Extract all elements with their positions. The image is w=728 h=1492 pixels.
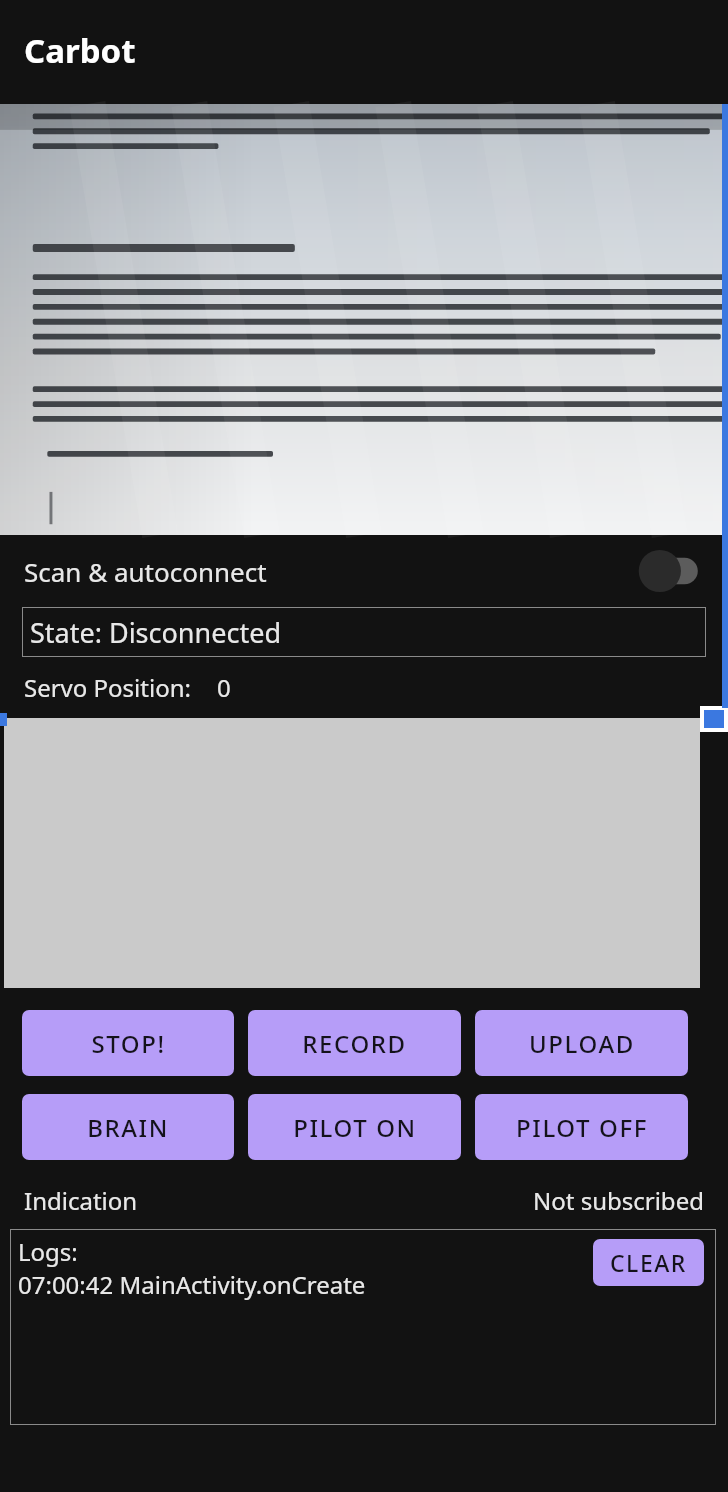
staticText: Not subscribed (533, 1184, 704, 1217)
staticText: 07:00:42 MainActivity.onCreate (18, 1268, 366, 1301)
staticText: State: Disconnected (30, 614, 281, 651)
staticText: Logs: (18, 1235, 78, 1268)
staticText: STOP! (91, 1027, 166, 1060)
button[interactable]: STOP! (22, 1010, 234, 1076)
staticText: CLEAR (610, 1247, 687, 1278)
button[interactable]: Scan & autoconnect (0, 535, 728, 607)
staticText: Carbot (24, 28, 136, 73)
button[interactable]: UPLOAD (475, 1010, 688, 1076)
button[interactable]: CLEAR (593, 1239, 704, 1286)
staticText: PILOT OFF (516, 1111, 648, 1144)
staticText: BRAIN (87, 1111, 169, 1144)
staticText: 0 (217, 671, 231, 704)
staticText: Scan & autoconnect (24, 554, 267, 589)
button[interactable]: PILOT ON (248, 1094, 461, 1160)
button[interactable]: Scan and autoconnect toggle (642, 551, 704, 591)
staticText: Indication (24, 1184, 138, 1217)
button[interactable]: RECORD (248, 1010, 461, 1076)
staticText: PILOT ON (293, 1111, 417, 1144)
button[interactable]: BRAIN (22, 1094, 234, 1160)
staticText: RECORD (302, 1027, 407, 1060)
button[interactable]: State: Disconnected (22, 607, 706, 657)
staticText: Servo Position: (24, 671, 191, 704)
staticText: UPLOAD (529, 1027, 635, 1060)
button[interactable]: PILOT OFF (475, 1094, 688, 1160)
